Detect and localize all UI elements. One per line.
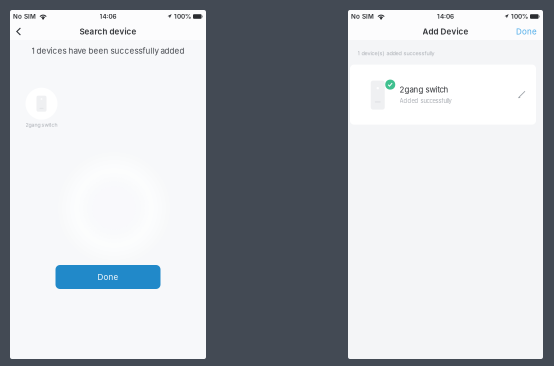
button[interactable]: Done [55, 265, 160, 289]
staticText: 14:06 [437, 13, 454, 20]
button[interactable]: Back [10, 23, 29, 40]
staticText: 1 device(s) added successfully [357, 50, 434, 57]
staticText: 100% [511, 13, 528, 20]
staticText: Done [516, 27, 537, 36]
staticText: Done [97, 272, 118, 282]
staticText: No SIM [351, 13, 374, 20]
staticText: Added successfully [399, 97, 451, 104]
staticText: Search device [79, 27, 136, 36]
staticText: 2gang switch [25, 122, 57, 128]
staticText: No SIM [13, 13, 36, 20]
button[interactable]: 2gang switch [350, 65, 536, 125]
staticText: 100% [174, 13, 191, 20]
staticText: 1 devices have been successfully added [31, 46, 184, 56]
staticText: 2gang switch [399, 85, 448, 94]
staticText: Add Device [422, 27, 468, 36]
button[interactable]: Done [508, 23, 543, 40]
staticText: 14:06 [99, 13, 116, 20]
